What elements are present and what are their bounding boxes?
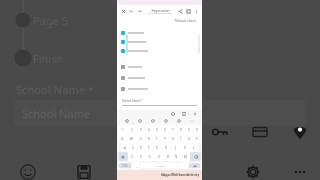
button[interactable]: Q [118,134,127,143]
button[interactable]: 8 [177,125,185,134]
button[interactable]: Translate [170,111,176,117]
staticText: I [180,137,182,141]
button[interactable]: Save [74,162,94,180]
staticText: P [196,137,198,141]
button[interactable]: S [129,143,137,152]
button[interactable]: Voice input [192,111,198,117]
button[interactable]: G [153,143,162,152]
button[interactable] [121,76,202,80]
button[interactable]: N [172,152,181,161]
staticText: 5 [156,128,158,132]
button[interactable]: School Name [14,100,306,126]
button[interactable]: U [169,134,177,143]
button[interactable]: Password [210,122,230,142]
staticText: Registration [151,9,170,13]
staticText: M [184,155,187,159]
button[interactable]: Space [141,163,179,168]
staticText: U [172,137,175,141]
button[interactable]: Registration [146,9,174,14]
button[interactable]: Shift [118,152,128,161]
button[interactable]: K [180,143,189,152]
staticText: E [140,137,142,141]
staticText: Page 5 [33,13,68,28]
button[interactable]: 4 [145,125,153,134]
button[interactable]: Card [250,122,270,142]
button[interactable] [121,31,202,35]
button[interactable]: Backspace [190,152,201,161]
button[interactable]: Z [128,152,136,161]
staticText: School Name * [16,82,95,97]
button[interactable]: 9 [185,125,193,134]
button[interactable]: 1 [118,125,127,134]
staticText: 7 [172,128,174,132]
button[interactable]: Close [119,7,127,15]
staticText: 8 [180,128,182,132]
staticText: G [156,146,159,150]
button[interactable]: M [181,152,190,161]
button[interactable]: Undo [127,7,135,15]
button[interactable]: 7 [169,125,177,134]
button[interactable]: P [193,134,201,143]
button[interactable]: Emoji [18,162,38,180]
staticText: 2 [131,128,133,132]
staticText: D [140,146,143,150]
button[interactable]: GIF [137,118,143,124]
button[interactable] [121,49,202,53]
button[interactable]: Search [163,118,169,124]
button[interactable]: J [171,143,180,152]
button[interactable] [121,40,202,44]
button[interactable]: W [127,134,136,143]
button[interactable]: 0 [193,125,201,134]
button[interactable]: Enter [189,163,200,168]
button[interactable]: 6 [161,125,169,134]
staticText: L [193,146,195,150]
button[interactable]: E [136,134,145,143]
staticText: ?123 [122,164,128,168]
staticText: W [130,137,133,141]
button[interactable]: 5 [153,125,161,134]
button[interactable]: Redo [135,7,143,15]
button[interactable]: A [121,143,129,152]
staticText: F [148,146,150,150]
button[interactable]: Emoji [124,118,130,124]
button[interactable]: School Name * [122,99,197,106]
button[interactable]: V [154,152,163,161]
button[interactable]: More [189,118,195,124]
button[interactable]: T [153,134,161,143]
button[interactable]: Sticker [150,118,156,124]
button[interactable]: , [132,162,140,169]
staticText: X [140,155,142,159]
button[interactable]: Clipboard [181,111,187,117]
button[interactable]: Settings [176,118,182,124]
button[interactable]: H [162,143,171,152]
button[interactable]: Symbols [119,163,131,168]
button[interactable]: F [145,143,153,152]
button[interactable]: More [290,162,310,180]
staticText: J [175,146,176,150]
staticText: 9 [188,128,190,132]
button[interactable]: 3 [136,125,145,134]
button[interactable]: I [177,134,185,143]
button[interactable]: L [189,143,198,152]
button[interactable]: Settings [243,162,263,180]
staticText: C [149,155,151,159]
button[interactable]: Preview [184,7,192,15]
button[interactable]: X [136,152,145,161]
staticText: K [184,146,186,150]
button[interactable]: B [163,152,172,161]
staticText: 1 [122,128,124,132]
button[interactable]: Share [176,7,184,15]
button[interactable]: C [145,152,154,161]
button[interactable]: 2 [127,125,136,134]
button[interactable]: R [145,134,153,143]
staticText: A [124,146,126,150]
button[interactable]: D [137,143,145,152]
button[interactable]: O [185,134,193,143]
button[interactable]: Location [290,122,310,142]
button[interactable] [121,65,202,69]
button[interactable]: Y [161,134,169,143]
button[interactable]: More options [192,7,200,15]
staticText: H [165,146,168,150]
button[interactable] [121,87,202,91]
